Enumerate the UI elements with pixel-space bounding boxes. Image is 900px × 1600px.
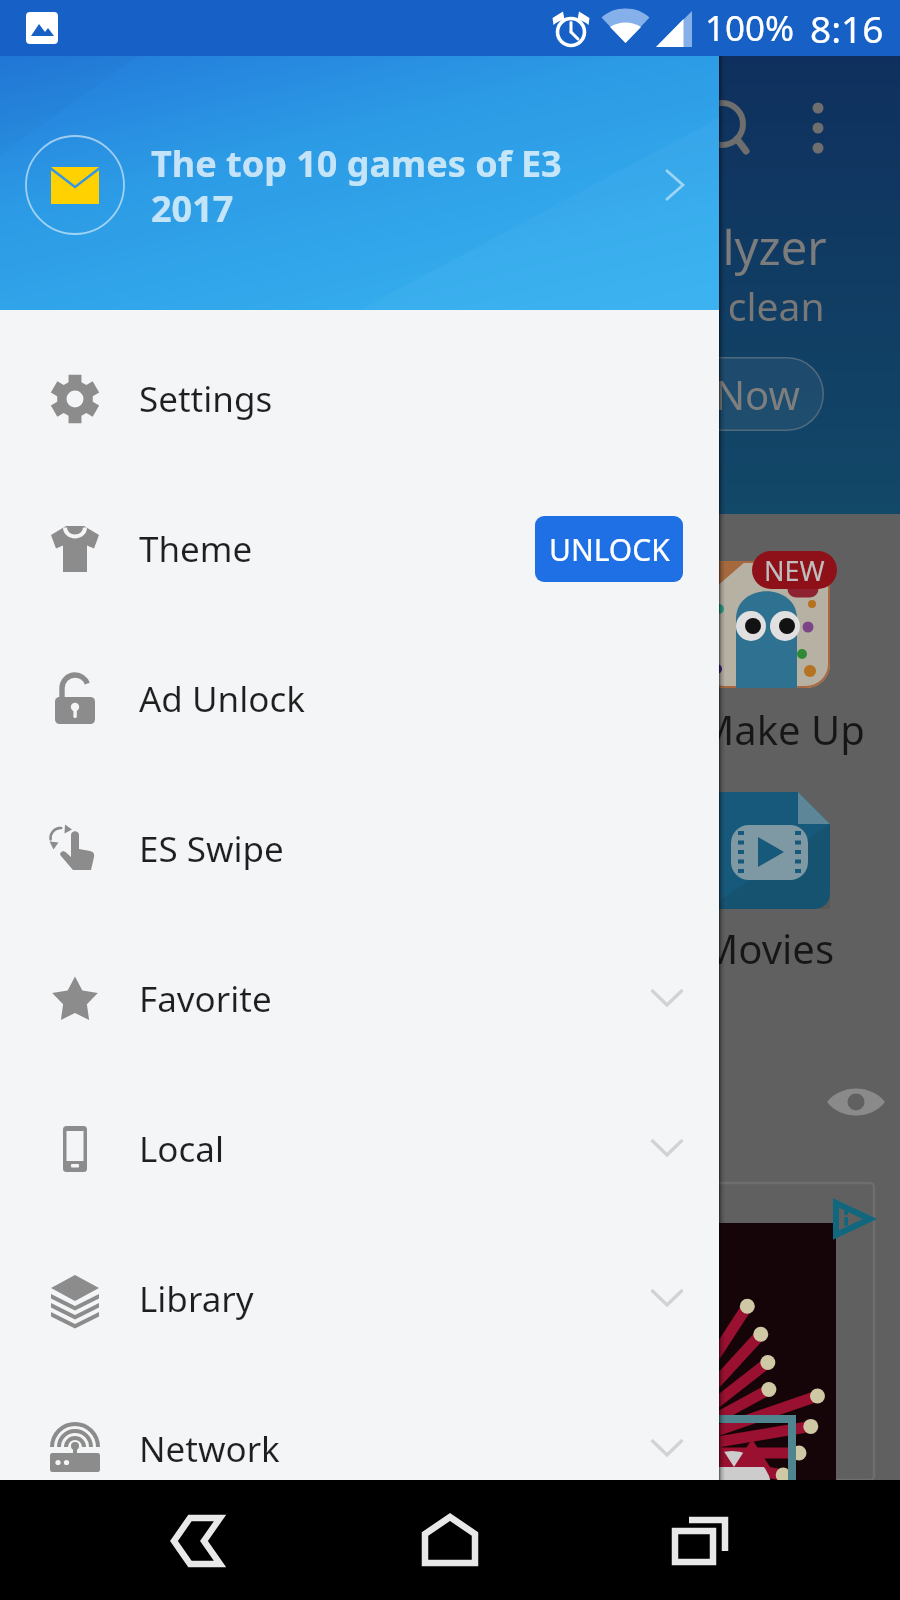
button[interactable]: Home — [390, 1481, 510, 1600]
staticText: NEW — [764, 552, 825, 589]
staticText: Local — [139, 1125, 224, 1173]
button[interactable]: More options — [768, 78, 868, 178]
staticText: Analyzer — [637, 215, 827, 279]
button[interactable]: Recent apps — [642, 1481, 762, 1600]
button[interactable]: Library — [0, 1224, 719, 1374]
staticText: 100% — [705, 4, 795, 52]
staticText: Favorite — [139, 975, 272, 1023]
staticText: Make Up — [698, 702, 865, 756]
staticText: ES Swipe — [139, 825, 284, 873]
staticText: The top 10 games of E3 2017 — [151, 139, 591, 232]
staticText: Library — [139, 1275, 254, 1323]
staticText: Settings — [139, 375, 273, 423]
staticText: Network — [139, 1425, 280, 1473]
staticText: 8:16 — [810, 3, 884, 53]
button[interactable]: Settings — [0, 324, 719, 474]
staticText: to clean — [680, 279, 825, 332]
staticText: Theme — [139, 525, 253, 573]
staticText: Ad Unlock — [139, 675, 305, 723]
button[interactable]: Network — [0, 1374, 719, 1480]
button[interactable]: The top 10 games of E3 2017 — [0, 0, 719, 310]
button[interactable]: Theme — [0, 474, 719, 624]
staticText: UNLOCK — [549, 529, 670, 570]
button[interactable]: ES Swipe — [0, 774, 719, 924]
button[interactable]: Ad Unlock — [0, 624, 719, 774]
staticText: Movies — [702, 921, 835, 975]
button[interactable]: Clean Now — [615, 357, 824, 431]
button[interactable]: Back — [141, 1481, 261, 1600]
staticText: Clean Now — [615, 367, 800, 421]
button[interactable]: Search — [672, 74, 772, 174]
button[interactable]: Local — [0, 1074, 719, 1224]
button[interactable]: Favorite — [0, 924, 719, 1074]
button[interactable]: UNLOCK — [535, 516, 683, 582]
